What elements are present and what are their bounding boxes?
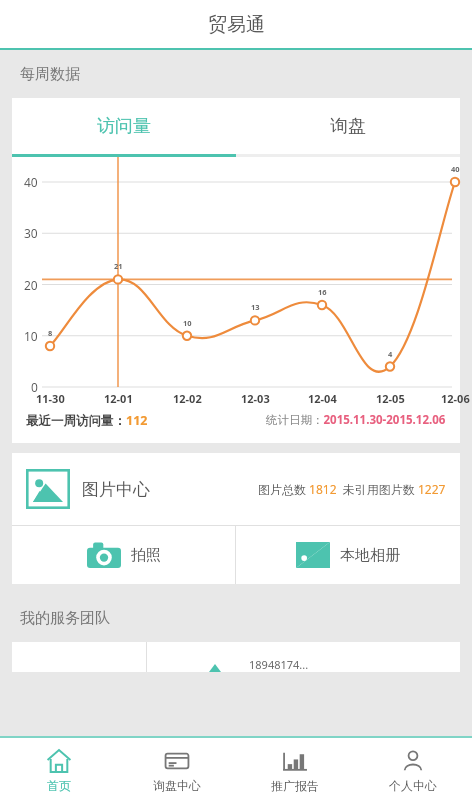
staticText: 0 — [31, 379, 38, 395]
staticText: 10 — [183, 318, 192, 328]
staticText: 12-04 — [308, 391, 337, 406]
staticText: 最近一周访问量：112 — [26, 412, 148, 429]
staticText: 16 — [318, 287, 327, 297]
staticText: 12-05 — [376, 391, 405, 406]
staticText: 12-03 — [241, 391, 270, 406]
button[interactable]: 推广报告 — [236, 738, 354, 800]
staticText: 访问量 — [97, 115, 151, 138]
button[interactable]: 本地相册 — [236, 526, 460, 584]
button[interactable]: 询盘中心 — [118, 738, 236, 800]
staticText: 推广报告 — [271, 778, 319, 793]
staticText: 10 — [24, 328, 38, 344]
staticText: 我的服务团队 — [20, 609, 110, 628]
staticText: 40 — [24, 174, 38, 190]
staticText: 13 — [251, 302, 260, 312]
staticText: 12-02 — [173, 391, 202, 406]
staticText: 20 — [24, 277, 38, 293]
staticText: 图片中心 — [82, 479, 150, 500]
staticText: 询盘中心 — [153, 778, 201, 793]
staticText: 询盘 — [330, 115, 366, 138]
staticText: 统计日期：2015.11.30-2015.12.06 — [266, 412, 446, 428]
staticText: 图片总数 1812 未引用图片数 1227 — [258, 481, 446, 497]
staticText: 首页 — [47, 778, 71, 793]
staticText: 每周数据 — [20, 65, 80, 84]
staticText: 12-06 — [441, 391, 470, 406]
staticText: 40 — [451, 164, 460, 174]
button[interactable]: 询盘 — [236, 98, 460, 154]
button[interactable]: 拍照 — [12, 526, 235, 584]
staticText: 18948174... — [249, 657, 309, 672]
staticText: 个人中心 — [389, 778, 437, 793]
staticText: 8 — [48, 328, 53, 338]
button[interactable]: 访问量 — [12, 98, 236, 154]
staticText: 21 — [114, 261, 123, 271]
staticText: 4 — [388, 349, 393, 359]
button[interactable]: 图片中心 — [12, 453, 460, 525]
staticText: 本地相册 — [340, 546, 400, 565]
staticText: 贸易通 — [208, 13, 265, 37]
button[interactable]: 首页 — [0, 738, 118, 800]
staticText: 12-01 — [104, 391, 133, 406]
staticText: 11-30 — [36, 391, 65, 406]
staticText: 30 — [24, 225, 38, 241]
button[interactable]: 个人中心 — [354, 738, 472, 800]
staticText: 拍照 — [131, 546, 161, 565]
